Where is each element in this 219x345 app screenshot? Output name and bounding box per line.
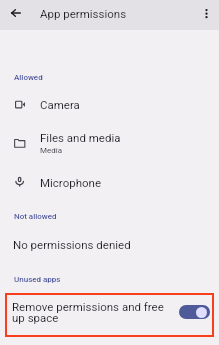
staticText: Microphone bbox=[40, 176, 101, 189]
staticText: Camera bbox=[40, 98, 80, 111]
staticText: Media bbox=[40, 146, 63, 155]
button[interactable]: Remove permissions and free up space bbox=[7, 295, 212, 335]
staticText: No permissions denied bbox=[13, 238, 131, 251]
staticText: Remove permissions and free up space bbox=[12, 300, 164, 325]
button[interactable]: More options bbox=[189, 0, 219, 30]
button[interactable]: Files and media bbox=[0, 128, 219, 156]
staticText: App permissions bbox=[40, 7, 127, 20]
staticText: Not allowed bbox=[14, 212, 57, 221]
staticText: Files and media bbox=[40, 131, 121, 144]
staticText: Allowed bbox=[14, 73, 43, 82]
button[interactable]: Camera bbox=[0, 96, 219, 114]
button[interactable]: Navigate up bbox=[0, 0, 30, 30]
staticText: Unused apps bbox=[14, 275, 61, 284]
button[interactable]: Microphone bbox=[0, 173, 219, 191]
